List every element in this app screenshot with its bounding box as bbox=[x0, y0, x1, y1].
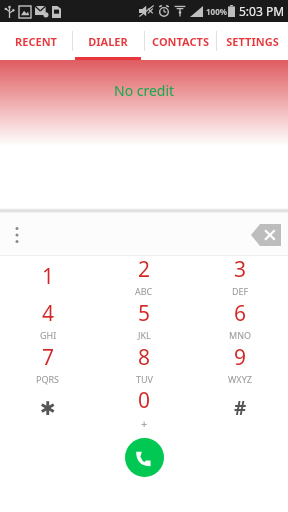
staticText: 5:03 PM bbox=[239, 3, 285, 19]
button[interactable]: More options bbox=[0, 213, 34, 256]
staticText: MNO bbox=[229, 329, 252, 341]
staticText: 8 bbox=[138, 343, 151, 372]
button[interactable]: Call bbox=[125, 438, 164, 477]
staticText: JKL bbox=[138, 329, 151, 341]
staticText: 2 bbox=[138, 255, 151, 284]
staticText: 0 bbox=[138, 386, 151, 415]
staticText: 4 bbox=[42, 299, 55, 328]
button[interactable]: 4 bbox=[0, 300, 96, 344]
button[interactable]: 8 bbox=[96, 344, 192, 388]
button[interactable]: RECENT bbox=[0, 22, 72, 60]
staticText: + bbox=[141, 416, 148, 430]
button[interactable]: 5 bbox=[96, 300, 192, 344]
button[interactable]: 6 bbox=[192, 300, 288, 344]
button[interactable]: CONTACTS bbox=[144, 22, 216, 60]
button[interactable]: SETTINGS bbox=[216, 22, 288, 60]
staticText: # bbox=[234, 395, 247, 421]
staticText: CONTACTS bbox=[152, 34, 209, 49]
button[interactable]: 1 bbox=[0, 256, 96, 300]
button[interactable]: # bbox=[192, 388, 288, 432]
staticText: 3 bbox=[234, 255, 247, 284]
staticText: 6 bbox=[234, 299, 247, 328]
staticText: No credit bbox=[114, 81, 175, 100]
staticText: 5 bbox=[138, 299, 151, 328]
button[interactable]: 0 bbox=[96, 388, 192, 432]
staticText: RECENT bbox=[15, 34, 57, 49]
staticText: 9 bbox=[234, 343, 247, 372]
staticText: DEF bbox=[232, 285, 249, 297]
staticText: 1 bbox=[42, 262, 55, 291]
staticText: GHI bbox=[40, 329, 57, 341]
button[interactable]: ✱ bbox=[0, 388, 96, 432]
staticText: ✱ bbox=[40, 397, 56, 419]
staticText: DIALER bbox=[88, 34, 128, 49]
staticText: TUV bbox=[136, 373, 153, 385]
staticText: 100% bbox=[206, 6, 227, 17]
staticText: 7 bbox=[42, 343, 55, 372]
button[interactable]: 2 bbox=[96, 256, 192, 300]
staticText: WXYZ bbox=[228, 373, 252, 385]
staticText: ABC bbox=[135, 285, 153, 297]
button[interactable]: 7 bbox=[0, 344, 96, 388]
staticText: PQRS bbox=[36, 373, 60, 385]
staticText: SETTINGS bbox=[226, 34, 279, 49]
button[interactable]: 3 bbox=[192, 256, 288, 300]
button[interactable]: DIALER bbox=[72, 22, 144, 60]
button[interactable]: Backspace bbox=[244, 213, 288, 256]
button[interactable]: 9 bbox=[192, 344, 288, 388]
